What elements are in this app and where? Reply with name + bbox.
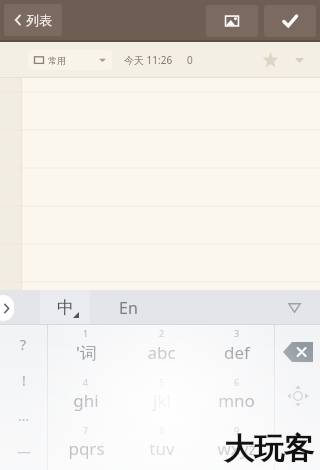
button[interactable]: 列表	[4, 4, 62, 36]
staticText: 4	[83, 376, 89, 388]
button[interactable]: 4	[48, 374, 124, 422]
button[interactable]: 中	[40, 290, 90, 325]
button[interactable]: 6	[199, 374, 274, 422]
staticText: !	[22, 371, 26, 390]
staticText: 9	[234, 424, 240, 436]
staticText: 0	[187, 53, 193, 67]
staticText: 6	[234, 376, 240, 388]
button[interactable]: Backspace	[281, 341, 315, 363]
button[interactable]: 8	[124, 422, 199, 470]
button[interactable]: …	[0, 398, 47, 432]
button[interactable]: 7	[48, 422, 124, 470]
staticText: 今天 11:26	[124, 53, 173, 67]
staticText: 1	[83, 327, 89, 339]
button[interactable]: Expand keyboard panel	[0, 295, 14, 321]
staticText: 7	[83, 424, 89, 436]
button[interactable]: Cursor navigation	[281, 379, 315, 413]
staticText: '词	[76, 341, 97, 364]
button[interactable]: 9	[199, 422, 274, 470]
staticText: 中	[57, 297, 74, 318]
staticText: 2	[159, 327, 165, 339]
staticText: def	[224, 341, 250, 364]
button[interactable]: Insert image	[206, 5, 258, 37]
staticText: 5	[159, 376, 165, 388]
button[interactable]: —	[0, 434, 47, 468]
button[interactable]: Favorite	[256, 46, 284, 74]
staticText: jkl	[153, 389, 171, 412]
staticText: ghi	[73, 389, 99, 412]
staticText: —	[17, 442, 31, 461]
staticText: 3	[234, 327, 240, 339]
staticText: …	[18, 406, 30, 425]
button[interactable]: 3	[199, 325, 274, 374]
button[interactable]: Hide keyboard	[282, 296, 306, 320]
staticText: 常用	[48, 55, 66, 66]
button[interactable]	[0, 78, 320, 290]
staticText: mno	[218, 389, 255, 412]
button[interactable]: More options	[288, 49, 310, 71]
staticText: 列表	[26, 12, 52, 28]
staticText: abc	[147, 341, 176, 364]
staticText: 8	[159, 424, 165, 436]
button[interactable]: !	[0, 363, 47, 397]
button[interactable]: 1	[48, 325, 124, 374]
staticText: En	[119, 297, 138, 319]
staticText: wxyz	[217, 437, 257, 460]
staticText: ?	[20, 335, 27, 354]
staticText: pqrs	[68, 437, 105, 460]
button[interactable]: 常用	[34, 50, 106, 70]
staticText: 大玩客	[224, 430, 314, 468]
staticText: tuv	[149, 437, 175, 460]
button[interactable]: ?	[0, 327, 47, 361]
button[interactable]: 2	[124, 325, 199, 374]
button[interactable]: Done	[264, 5, 316, 37]
button[interactable]: En	[100, 290, 156, 325]
